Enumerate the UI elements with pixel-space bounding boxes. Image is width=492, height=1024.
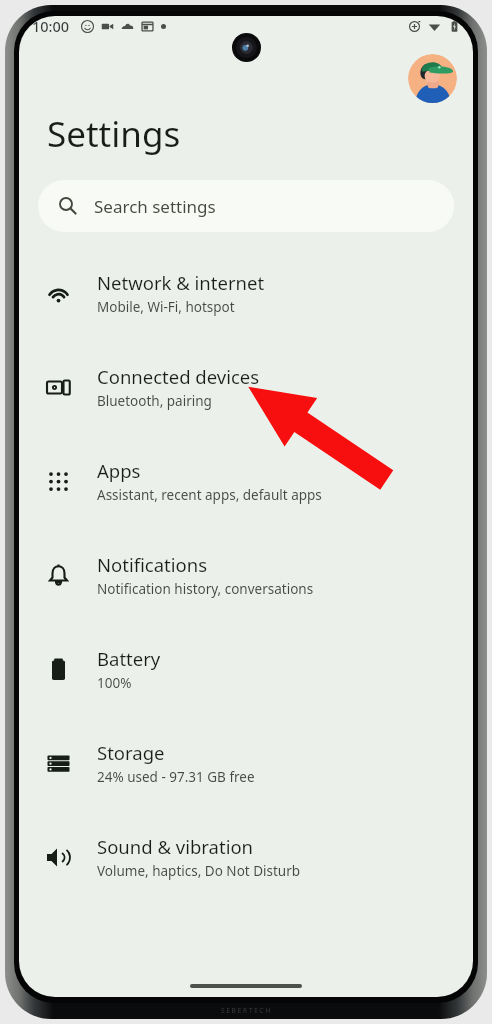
staticText: Notifications <box>97 552 208 577</box>
button[interactable]: Storage <box>19 716 473 810</box>
button[interactable]: Search settings <box>38 180 454 232</box>
staticText: Search settings <box>94 195 216 218</box>
button[interactable]: Sound & vibration <box>19 810 473 904</box>
staticText: Bluetooth, pairing <box>97 392 212 410</box>
staticText: Sound & vibration <box>97 834 254 859</box>
staticText: SEBERTECH <box>221 1006 272 1016</box>
staticText: Battery <box>97 646 161 671</box>
button[interactable]: Battery <box>19 622 473 716</box>
staticText: Connected devices <box>97 364 260 389</box>
staticText: 100% <box>97 674 132 692</box>
staticText: 24% used - 97.31 GB free <box>97 768 255 786</box>
staticText: Apps <box>97 458 141 483</box>
staticText: Notification history, conversations <box>97 580 314 598</box>
button[interactable]: Apps <box>19 434 473 528</box>
staticText: Volume, haptics, Do Not Disturb <box>97 862 301 880</box>
button[interactable]: Connected devices <box>19 340 473 434</box>
staticText: Storage <box>97 740 165 765</box>
staticText: Assistant, recent apps, default apps <box>97 486 322 504</box>
button[interactable]: Account avatar <box>408 54 457 103</box>
button[interactable]: Notifications <box>19 528 473 622</box>
staticText: 10:00 <box>32 16 70 36</box>
button[interactable]: Network & internet <box>19 246 473 340</box>
staticText: Settings <box>47 110 181 158</box>
staticText: Network & internet <box>97 270 265 295</box>
staticText: Mobile, Wi-Fi, hotspot <box>97 298 235 316</box>
